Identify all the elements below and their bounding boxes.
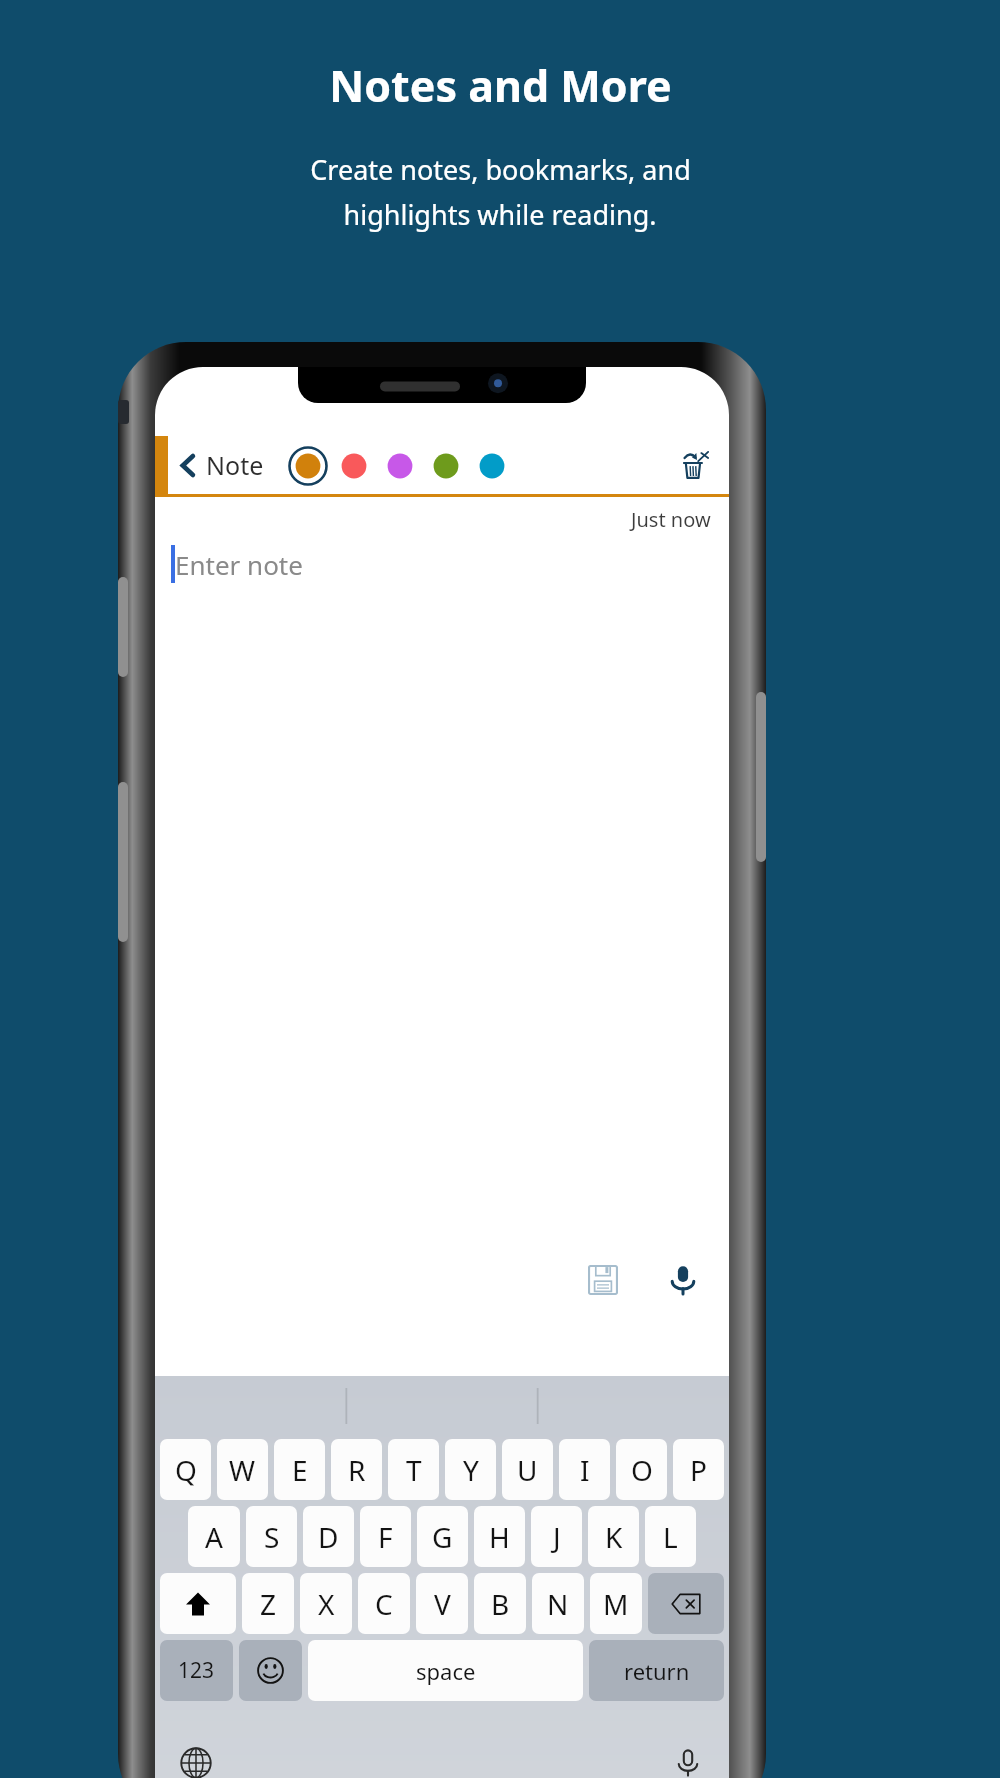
staticText: A <box>205 1518 223 1556</box>
button[interactable]: G <box>417 1506 468 1567</box>
staticText: R <box>348 1451 366 1489</box>
button[interactable]: Highlight colour 3 <box>378 444 421 487</box>
staticText: Enter note <box>175 547 303 582</box>
staticText: W <box>229 1451 256 1489</box>
button[interactable]: X <box>300 1573 352 1634</box>
staticText: F <box>378 1518 393 1556</box>
staticText: Y <box>463 1451 479 1489</box>
staticText: Notes and More <box>329 56 672 115</box>
staticText: G <box>432 1518 453 1556</box>
staticText: T <box>406 1451 422 1489</box>
button[interactable]: Highlight colour 1 <box>286 444 329 487</box>
button[interactable]: E <box>274 1439 325 1500</box>
staticText: I <box>580 1451 590 1489</box>
button[interactable]: Dictate <box>663 1738 713 1778</box>
button[interactable]: O <box>616 1439 667 1500</box>
staticText: highlights while reading. <box>343 196 657 233</box>
button[interactable]: S <box>246 1506 297 1567</box>
button[interactable]: Shift <box>160 1573 236 1634</box>
button[interactable]: Emoji <box>239 1640 302 1701</box>
staticText: V <box>434 1585 451 1623</box>
staticText: 123 <box>178 1656 215 1685</box>
button[interactable]: Switch keyboard <box>171 1738 221 1778</box>
staticText: B <box>491 1585 510 1623</box>
button[interactable]: Note <box>175 444 268 486</box>
button[interactable]: Y <box>445 1439 496 1500</box>
staticText: U <box>517 1451 538 1489</box>
staticText: Just now <box>631 506 711 533</box>
staticText: Note <box>206 448 264 482</box>
button[interactable]: P <box>673 1439 724 1500</box>
button[interactable]: B <box>474 1573 526 1634</box>
staticText: H <box>489 1518 510 1556</box>
staticText: J <box>553 1518 561 1556</box>
staticText: L <box>663 1518 678 1556</box>
staticText: N <box>547 1585 569 1623</box>
button[interactable]: T <box>388 1439 439 1500</box>
button[interactable]: 123 <box>160 1640 233 1701</box>
staticText: X <box>318 1585 335 1623</box>
button[interactable]: K <box>588 1506 639 1567</box>
staticText: O <box>631 1451 653 1489</box>
button[interactable]: D <box>303 1506 354 1567</box>
button[interactable]: Q <box>160 1439 211 1500</box>
button[interactable]: I <box>559 1439 610 1500</box>
button[interactable]: A <box>188 1506 240 1567</box>
staticText: space <box>416 1656 476 1686</box>
staticText: E <box>292 1451 308 1489</box>
button[interactable]: Highlight colour 2 <box>332 444 375 487</box>
staticText: M <box>603 1585 629 1623</box>
staticText: return <box>624 1656 690 1686</box>
staticText: P <box>690 1451 707 1489</box>
staticText: D <box>318 1518 339 1556</box>
staticText: K <box>605 1518 623 1556</box>
button[interactable]: Save note <box>579 1256 627 1304</box>
button[interactable]: Discard note <box>671 442 717 488</box>
button[interactable]: Highlight colour 4 <box>424 444 467 487</box>
button[interactable]: F <box>360 1506 411 1567</box>
button[interactable]: U <box>502 1439 553 1500</box>
button[interactable]: Z <box>242 1573 294 1634</box>
button[interactable]: V <box>416 1573 468 1634</box>
button[interactable]: Voice note <box>659 1256 707 1304</box>
staticText: Z <box>260 1585 277 1623</box>
button[interactable]: return <box>589 1640 724 1701</box>
button[interactable]: space <box>308 1640 583 1701</box>
button[interactable]: C <box>358 1573 410 1634</box>
staticText: C <box>375 1585 393 1623</box>
button[interactable]: R <box>331 1439 382 1500</box>
button[interactable]: M <box>590 1573 642 1634</box>
button[interactable]: L <box>645 1506 696 1567</box>
button[interactable]: J <box>531 1506 582 1567</box>
staticText: Create notes, bookmarks, and <box>310 151 691 188</box>
button[interactable]: H <box>474 1506 525 1567</box>
staticText: Q <box>175 1451 197 1489</box>
button[interactable]: W <box>217 1439 268 1500</box>
staticText: S <box>264 1518 280 1556</box>
button[interactable]: Highlight colour 5 <box>470 444 513 487</box>
button[interactable]: N <box>532 1573 584 1634</box>
button[interactable]: Backspace <box>648 1573 724 1634</box>
